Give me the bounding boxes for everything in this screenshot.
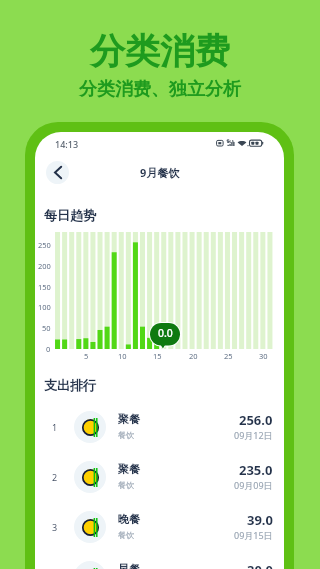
staticText: 256.0 — [239, 411, 273, 429]
staticText: 50 — [42, 323, 51, 333]
staticText: 聚餐 — [118, 412, 140, 426]
staticText: 早餐 — [118, 562, 140, 569]
staticText: 0.0 — [158, 326, 173, 340]
button[interactable]: 返回 — [46, 161, 69, 184]
staticText: 09月15日 — [234, 529, 273, 541]
staticText: 20 — [189, 351, 198, 361]
staticText: 100 — [38, 302, 51, 312]
staticText: 10 — [118, 351, 127, 361]
staticText: 餐饮 — [118, 430, 134, 440]
staticText: 9月餐饮 — [140, 165, 180, 180]
staticText: 分类消费、独立分析 — [79, 78, 241, 101]
staticText: 餐饮 — [118, 530, 134, 540]
staticText: 5 — [84, 351, 89, 361]
button[interactable]: 4 — [35, 552, 284, 569]
staticText: 235.0 — [239, 461, 273, 479]
button[interactable]: 1 — [35, 402, 284, 452]
staticText: 晚餐 — [118, 512, 140, 526]
staticText: 30.0 — [247, 561, 273, 569]
staticText: 15 — [153, 351, 162, 361]
staticText: 09月12日 — [234, 429, 273, 441]
staticText: 150 — [38, 282, 51, 292]
staticText: 0 — [46, 344, 51, 354]
staticText: 200 — [38, 261, 51, 271]
staticText: 1 — [52, 421, 58, 433]
staticText: 09月09日 — [234, 479, 273, 491]
button[interactable]: 2 — [35, 452, 284, 502]
staticText: 25 — [224, 351, 233, 361]
staticText: 14:13 — [55, 138, 79, 150]
button[interactable]: 3 — [35, 502, 284, 552]
staticText: 39.0 — [247, 511, 273, 529]
staticText: 每日趋势 — [44, 207, 96, 223]
staticText: 30 — [259, 351, 268, 361]
staticText: 分类消费 — [90, 29, 230, 73]
staticText: 3 — [52, 521, 58, 533]
staticText: 2 — [52, 471, 58, 483]
staticText: 餐饮 — [118, 480, 134, 490]
staticText: 聚餐 — [118, 462, 140, 476]
staticText: 支出排行 — [44, 377, 96, 393]
staticText: 250 — [38, 240, 51, 250]
